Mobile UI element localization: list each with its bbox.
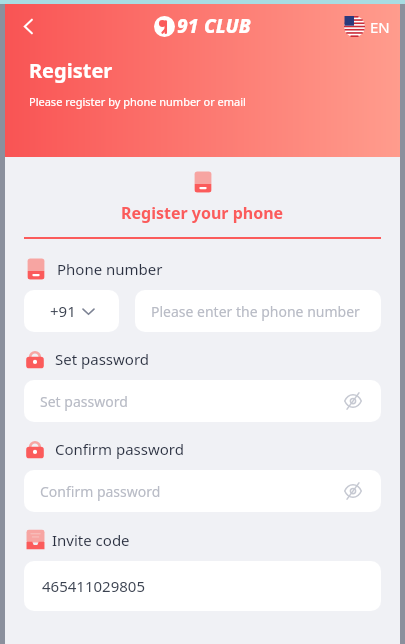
staticText: +91 — [50, 301, 76, 321]
staticText: Register — [29, 57, 113, 84]
button[interactable]: Set password — [24, 380, 381, 422]
button[interactable]: Confirm password — [24, 470, 381, 512]
staticText: Phone number — [57, 259, 163, 279]
staticText: Please register by phone number or email — [29, 94, 246, 109]
staticText: Set password — [40, 392, 128, 411]
staticText: Set password — [55, 349, 150, 369]
staticText: EN — [370, 17, 390, 37]
button[interactable]: 465411029805 — [24, 561, 381, 611]
staticText: Confirm password — [55, 439, 184, 459]
button[interactable]: Register your phone — [5, 157, 400, 239]
button[interactable]: Back — [11, 9, 45, 43]
staticText: Register your phone — [121, 202, 284, 224]
button[interactable]: Please enter the phone number — [135, 290, 381, 332]
staticText: 465411029805 — [42, 576, 145, 596]
button[interactable]: EN — [344, 16, 390, 37]
button[interactable]: +91 — [24, 290, 119, 332]
staticText: CLUB — [204, 13, 251, 39]
staticText: Please enter the phone number — [151, 302, 360, 321]
button[interactable]: Show password — [341, 479, 365, 503]
staticText: Confirm password — [40, 482, 161, 501]
button[interactable]: Show password — [341, 389, 365, 413]
staticText: 91 — [177, 13, 199, 39]
staticText: Invite code — [52, 530, 130, 550]
